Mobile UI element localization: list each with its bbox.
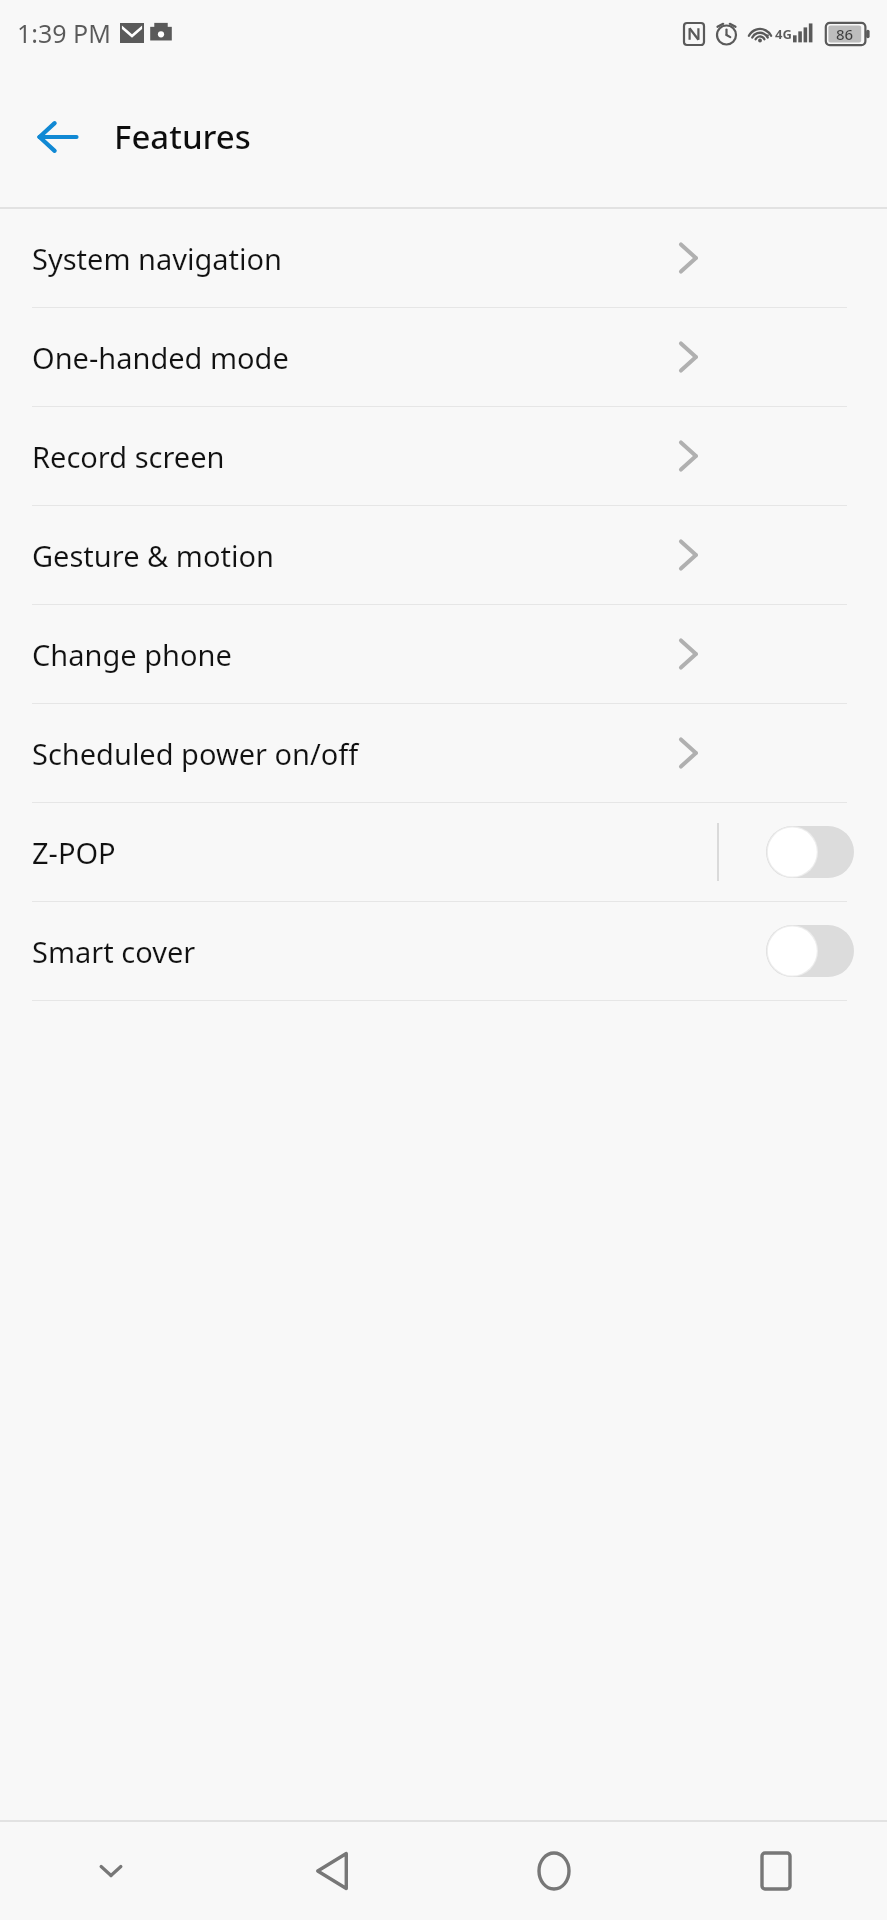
staticText: Smart cover xyxy=(32,932,196,971)
button[interactable]: Recent apps xyxy=(665,1822,887,1920)
button[interactable]: Change phone xyxy=(0,605,887,703)
button[interactable]: System navigation xyxy=(0,209,887,307)
staticText: 86 xyxy=(836,24,854,44)
staticText: Change phone xyxy=(32,635,232,674)
staticText: Features xyxy=(114,114,251,159)
staticText: Scheduled power on/off xyxy=(32,734,359,773)
button[interactable]: Z-POP xyxy=(0,803,887,901)
button[interactable]: Z-POP toggle, off xyxy=(766,826,854,878)
staticText: Record screen xyxy=(32,437,225,476)
button[interactable]: Back xyxy=(14,93,102,181)
button[interactable]: One-handed mode xyxy=(0,308,887,406)
staticText: Gesture & motion xyxy=(32,536,274,575)
button[interactable]: Back xyxy=(221,1822,443,1920)
staticText: System navigation xyxy=(32,239,283,278)
staticText: One-handed mode xyxy=(32,338,289,377)
button[interactable]: Gesture & motion xyxy=(0,506,887,604)
button[interactable]: Scheduled power on/off xyxy=(0,704,887,802)
button[interactable]: Hide navigation bar xyxy=(0,1822,221,1920)
staticText: Z-POP xyxy=(32,833,116,872)
button[interactable]: Home xyxy=(443,1822,665,1920)
button[interactable]: Smart cover xyxy=(0,902,887,1000)
staticText: 1:39 PM xyxy=(17,16,111,50)
button[interactable]: Smart cover toggle, off xyxy=(766,925,854,977)
button[interactable]: Record screen xyxy=(0,407,887,505)
staticText: 4G xyxy=(775,25,792,43)
